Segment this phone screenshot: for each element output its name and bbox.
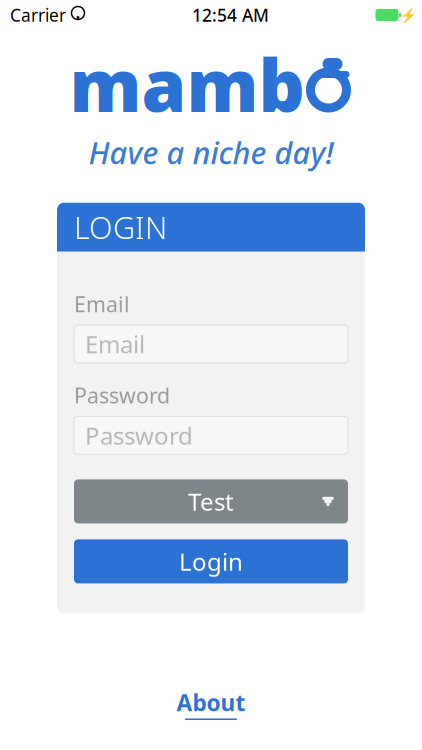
staticText: Have a niche day! [88,132,333,173]
button[interactable]: Login [74,539,348,583]
staticText: Password [74,381,170,409]
staticText: About [176,687,245,717]
staticText: 12:54 AM [192,3,269,26]
staticText: mamb [69,36,304,132]
button[interactable]: Test [74,479,348,523]
staticText: Login [179,545,243,577]
staticText: Test [188,485,234,517]
staticText: Email [74,290,130,318]
staticText: Carrier [10,3,66,26]
button[interactable]: About [168,679,253,728]
staticText: Password [85,419,193,451]
staticText: LOGIN [74,207,167,248]
staticText: ⚡ [399,7,416,23]
staticText: Email [85,328,145,360]
